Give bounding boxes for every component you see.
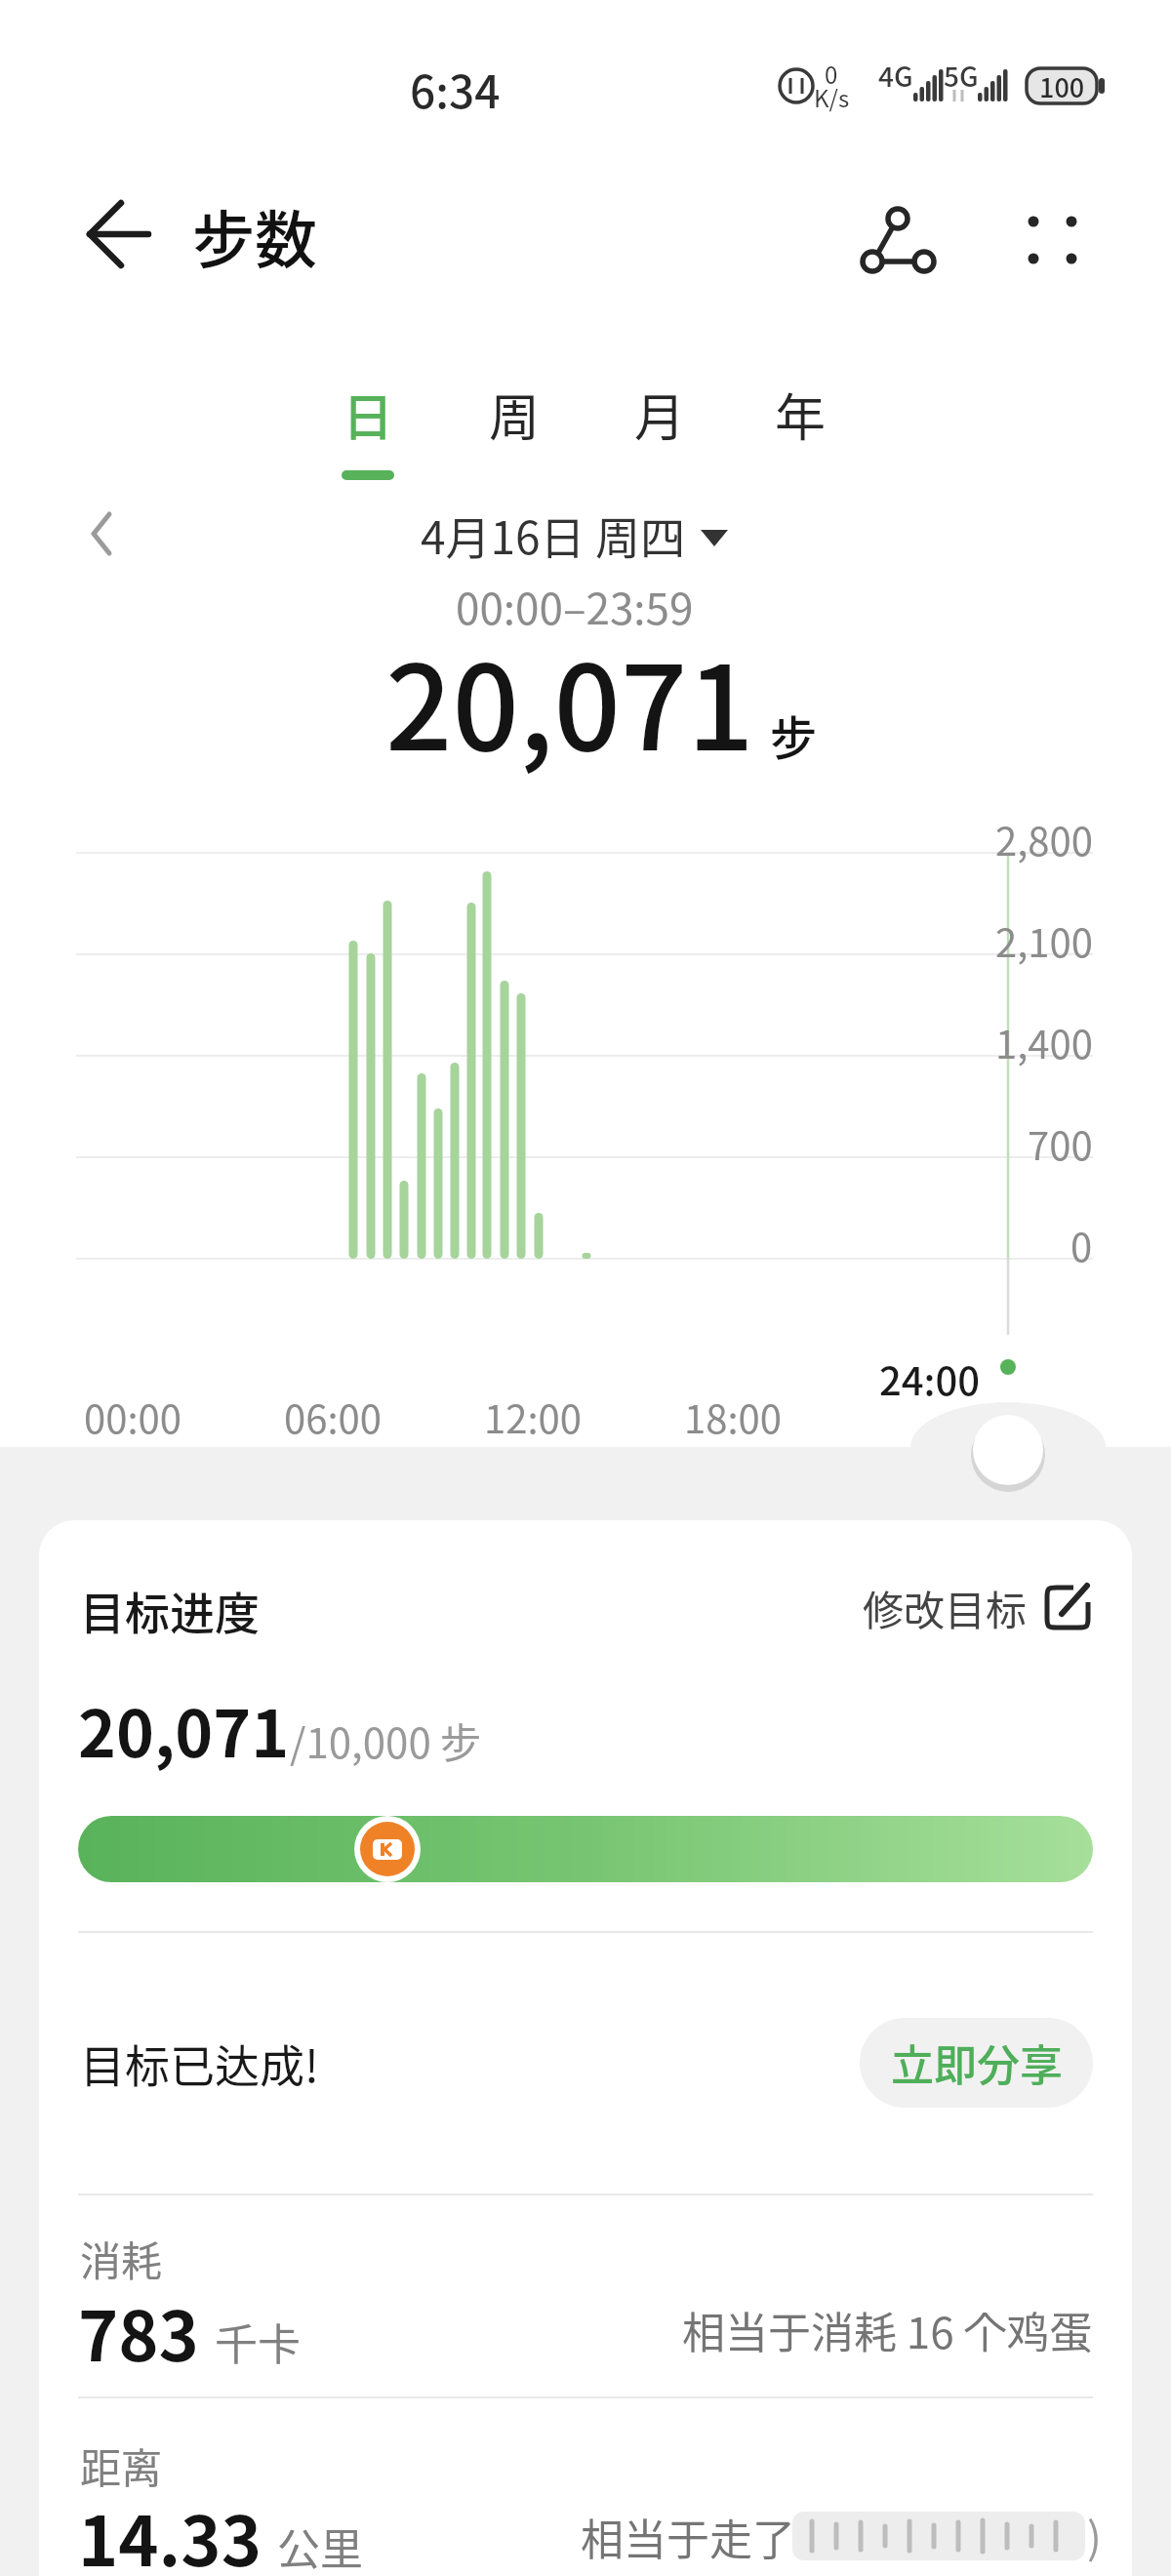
staticText: 步数 <box>192 190 317 281</box>
staticText: 12:00 <box>484 1389 582 1445</box>
staticText: 20,071 <box>385 615 754 785</box>
staticText: 4月16日 周四 <box>421 503 685 568</box>
staticText: K/s <box>814 80 850 114</box>
button[interactable] <box>78 1816 1093 1882</box>
staticText: 14.33 <box>78 2487 262 2576</box>
button[interactable] <box>614 371 707 483</box>
button[interactable] <box>468 371 561 483</box>
button[interactable] <box>1005 185 1103 283</box>
staticText: 18:00 <box>684 1389 782 1445</box>
button[interactable] <box>839 185 947 283</box>
staticText: 目标已达成! <box>80 2031 319 2096</box>
staticText: 2,800 <box>995 811 1093 867</box>
staticText: 日 <box>343 378 394 451</box>
staticText: 立即分享 <box>891 2032 1063 2094</box>
staticText: 00:00 <box>84 1389 182 1445</box>
staticText: 消耗 <box>80 2229 163 2288</box>
staticText: 20,071 <box>78 1682 290 1776</box>
staticText: 06:00 <box>284 1389 382 1445</box>
staticText: 700 <box>1028 1115 1093 1172</box>
staticText: 相当于消耗 16 个鸡蛋 <box>682 2299 1093 2361</box>
staticText: 00:00–23:59 <box>456 575 694 637</box>
staticText: 4G <box>878 56 913 96</box>
staticText: 1,400 <box>995 1014 1093 1070</box>
button[interactable] <box>371 493 761 576</box>
staticText: 公里 <box>277 2516 363 2576</box>
staticText: 周 <box>489 378 541 451</box>
button[interactable] <box>754 371 847 483</box>
staticText: 距离 <box>80 2435 163 2495</box>
staticText: 步 <box>770 701 818 769</box>
staticText: 100 <box>1039 67 1085 105</box>
staticText: 5G <box>944 56 979 96</box>
staticText: /10,000 步 <box>290 1711 482 1770</box>
staticText: 年 <box>775 378 827 451</box>
staticText: 6:34 <box>410 57 501 122</box>
staticText: ) <box>1087 2504 1102 2566</box>
staticText: 月 <box>634 378 686 451</box>
staticText: 783 <box>78 2282 199 2381</box>
button[interactable] <box>829 1566 1093 1654</box>
staticText: 2,100 <box>995 912 1093 969</box>
staticText: 24:00 <box>879 1350 981 1407</box>
staticText: 0 <box>825 57 838 91</box>
staticText: 千卡 <box>215 2311 301 2373</box>
staticText: 相当于走了 <box>581 2506 795 2568</box>
staticText: 0 <box>1070 1217 1093 1273</box>
staticText: 修改目标 <box>863 1578 1028 1637</box>
staticText: 目标进度 <box>80 1578 260 1643</box>
button[interactable]: 立即分享 <box>860 2018 1093 2108</box>
button[interactable] <box>68 200 156 270</box>
button[interactable] <box>322 371 415 483</box>
